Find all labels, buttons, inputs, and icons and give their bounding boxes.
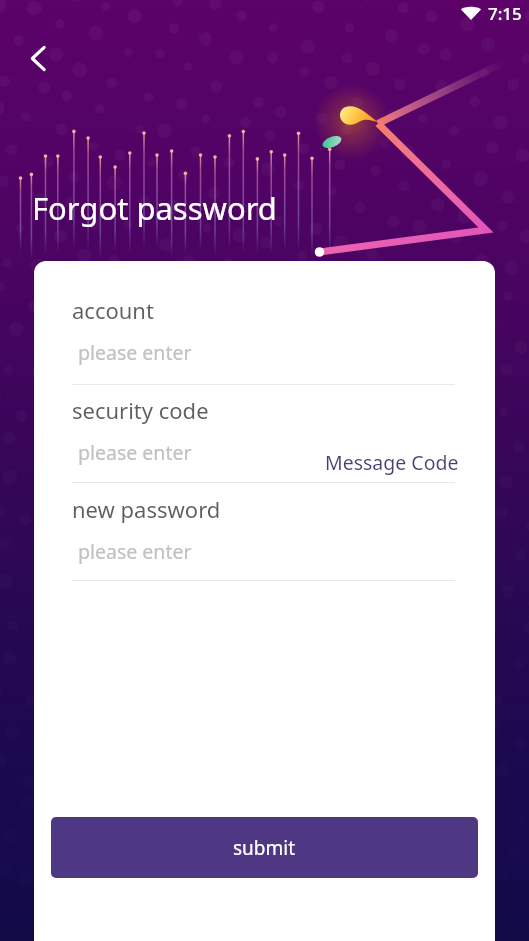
staticText: account (72, 295, 154, 325)
staticText: please enter (78, 439, 192, 466)
button[interactable]: Back (14, 34, 62, 82)
staticText: security code (72, 395, 209, 425)
staticText: 7:15 (488, 2, 522, 25)
staticText: Message Code (325, 449, 459, 476)
staticText: please enter (78, 538, 192, 565)
staticText: new password (72, 494, 221, 524)
button[interactable]: Message Code (325, 449, 459, 476)
staticText: submit (233, 835, 296, 861)
staticText: Forgot password (32, 187, 277, 229)
button[interactable]: submit (51, 817, 478, 878)
staticText: please enter (78, 339, 192, 366)
